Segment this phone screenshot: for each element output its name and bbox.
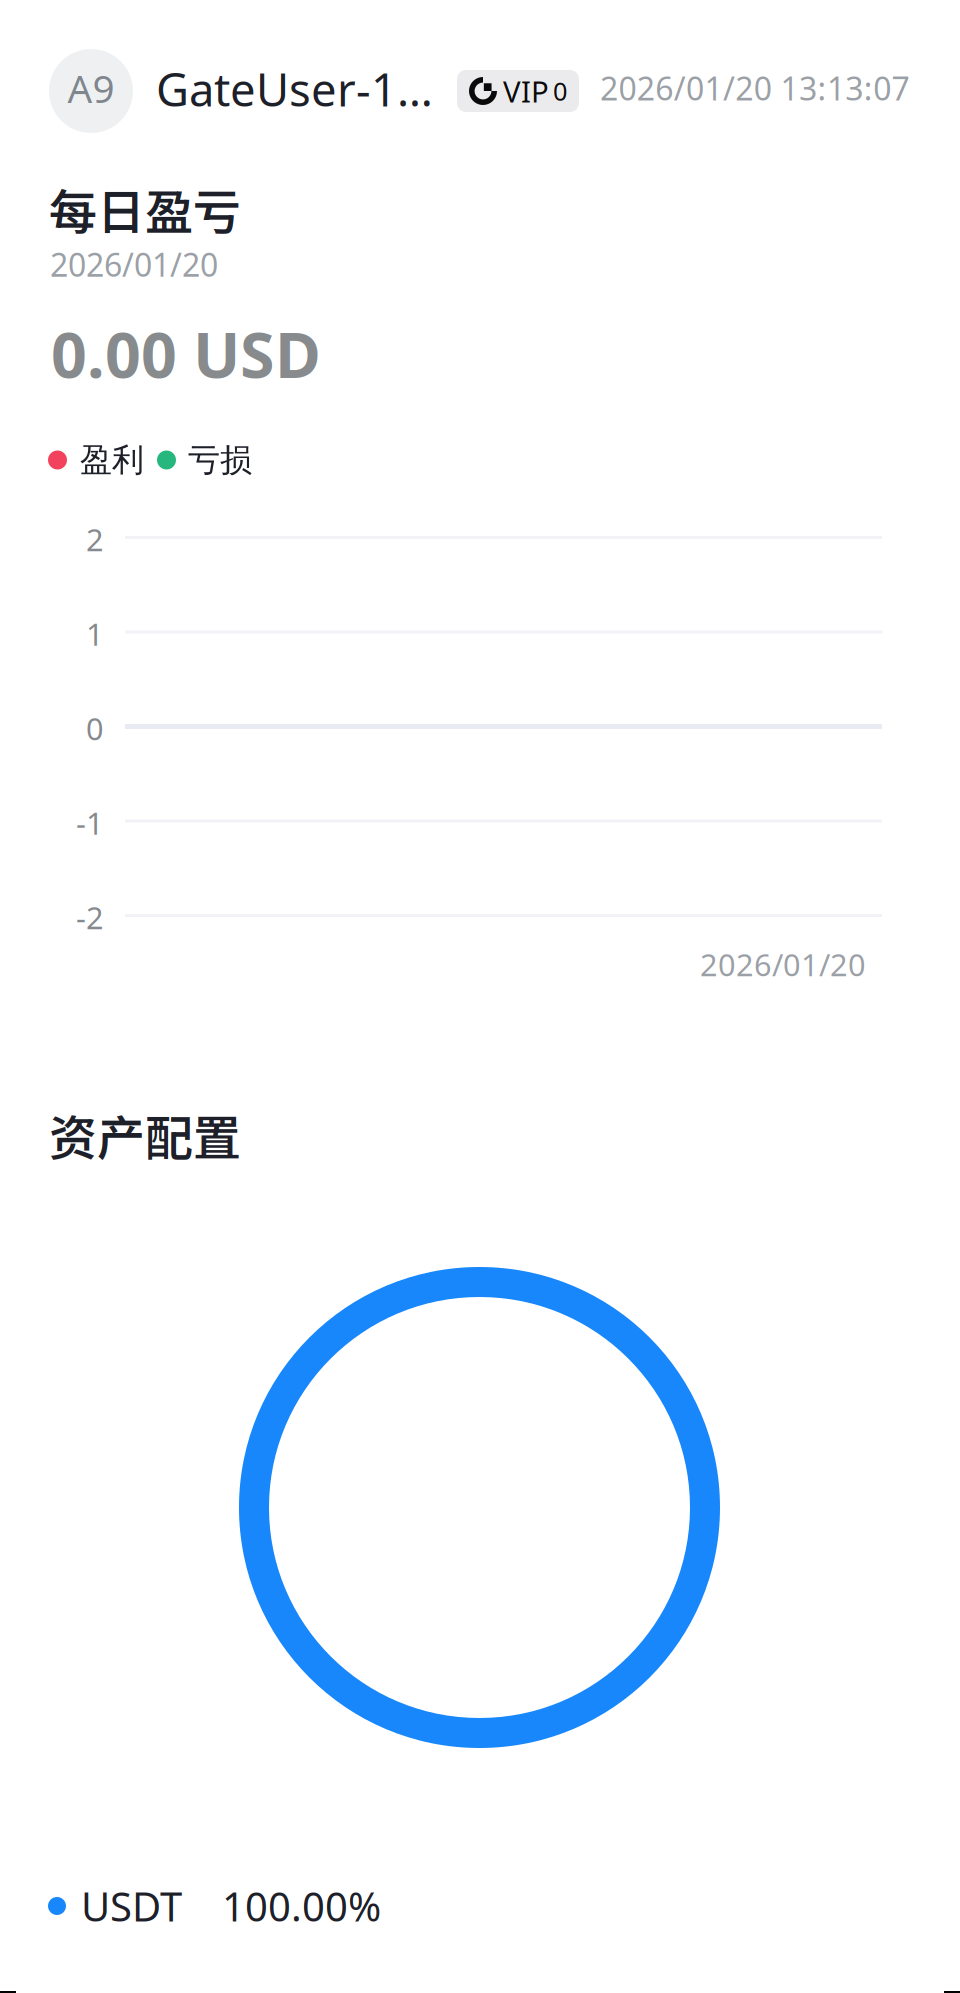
staticText: -2 <box>76 897 104 938</box>
staticText: VIP <box>503 71 549 110</box>
button[interactable]: Profile avatar <box>49 49 133 133</box>
staticText: 0.00 USD <box>51 312 321 395</box>
staticText: 0 <box>86 708 104 749</box>
staticText: -1 <box>76 802 104 843</box>
staticText: 2026/01/20 13:13:07 <box>600 67 910 109</box>
staticText: 每日盈亏 <box>49 174 241 243</box>
staticText: 资产配置 <box>49 1100 241 1169</box>
staticText: 2 <box>86 519 104 560</box>
staticText: 1 <box>86 613 104 654</box>
staticText: 0 <box>553 74 567 108</box>
staticText: A9 <box>67 62 114 114</box>
staticText: 2026/01/20 <box>50 243 218 285</box>
button[interactable]: VIP <box>457 70 579 112</box>
staticText: 盈利 <box>80 440 144 480</box>
staticText: USDT <box>81 1879 182 1932</box>
staticText: 100.00% <box>222 1879 381 1932</box>
staticText: 2026/01/20 <box>700 944 866 985</box>
staticText: GateUser-1… <box>156 59 433 119</box>
staticText: 亏损 <box>188 440 252 480</box>
